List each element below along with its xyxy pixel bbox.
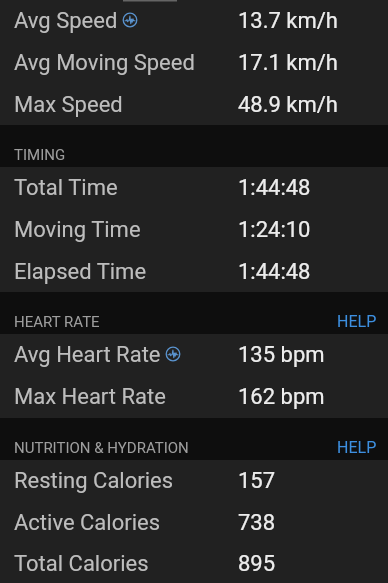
staticText: 157 xyxy=(238,468,276,494)
button[interactable]: Elapsed Time xyxy=(0,251,388,292)
other: Data source info xyxy=(122,12,138,28)
button[interactable]: Max Speed xyxy=(0,84,388,125)
staticText: HELP xyxy=(337,438,377,457)
staticText: 48.9 km/h xyxy=(238,92,338,118)
button[interactable]: Resting Calories xyxy=(0,460,388,502)
staticText: HELP xyxy=(337,312,377,331)
staticText: 1:44:48 xyxy=(238,175,311,201)
button[interactable]: Avg Heart Rate xyxy=(0,334,388,376)
button[interactable]: Active Calories xyxy=(0,502,388,543)
staticText: 162 bpm xyxy=(238,384,325,410)
staticText: Avg Moving Speed xyxy=(14,50,195,76)
button[interactable]: HELP xyxy=(324,430,388,460)
staticText: 17.1 km/h xyxy=(238,50,338,76)
button[interactable]: Avg Moving Speed xyxy=(0,42,388,84)
staticText: NUTRITION & HYDRATION xyxy=(14,439,189,457)
button[interactable]: Total Time xyxy=(0,167,388,209)
staticText: Avg Speed xyxy=(14,8,118,34)
staticText: 895 xyxy=(238,551,276,577)
staticText: TIMING xyxy=(14,146,66,164)
staticText: Total Time xyxy=(14,175,118,201)
button[interactable]: HELP xyxy=(324,304,388,334)
staticText: 1:24:10 xyxy=(238,217,311,243)
staticText: HEART RATE xyxy=(14,313,100,331)
staticText: Resting Calories xyxy=(14,468,174,494)
staticText: Max Heart Rate xyxy=(14,384,166,410)
staticText: 738 xyxy=(238,510,276,536)
staticText: Total Calories xyxy=(14,551,149,577)
staticText: Avg Heart Rate xyxy=(14,342,161,368)
staticText: 1:44:48 xyxy=(238,259,311,285)
button[interactable]: Avg Speed xyxy=(0,0,388,42)
button[interactable]: Moving Time xyxy=(0,209,388,251)
staticText: Active Calories xyxy=(14,510,161,536)
staticText: 135 bpm xyxy=(238,342,325,368)
staticText: Moving Time xyxy=(14,217,141,243)
staticText: Max Speed xyxy=(14,92,123,118)
other: Data source info xyxy=(165,346,181,362)
staticText: 13.7 km/h xyxy=(238,8,338,34)
button[interactable]: Total Calories xyxy=(0,543,388,583)
button[interactable]: Max Heart Rate xyxy=(0,376,388,418)
staticText: Elapsed Time xyxy=(14,259,147,285)
